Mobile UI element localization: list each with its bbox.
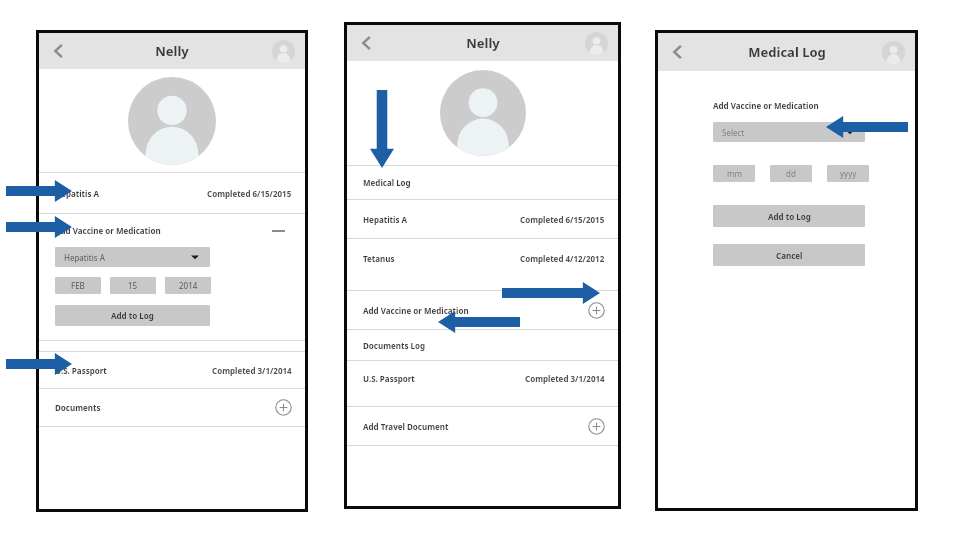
staticText: Completed 6/15/2015 [520,214,605,225]
staticText: U.S. Passport [363,373,415,384]
staticText: Medical Log [748,43,826,61]
button[interactable]: Documents Log [347,330,618,360]
staticText: Completed 4/12/2012 [520,253,605,264]
button[interactable]: Add Vaccine or Medication [347,291,618,329]
staticText: mm [727,168,742,179]
staticText: Completed 3/1/2014 [525,373,605,384]
other: Add [588,418,605,435]
staticText: Completed 3/1/2014 [212,365,292,376]
button[interactable]: mm [713,165,755,182]
staticText: Add to Log [768,211,811,222]
staticText: FEB [71,280,85,291]
button[interactable]: Cancel [713,244,865,266]
button[interactable]: Add to Log [55,305,210,326]
button[interactable]: Hepatitis A [347,200,618,238]
staticText: Hepatitis A [64,252,105,263]
staticText: Medical Log [363,177,411,188]
button[interactable]: Documents [39,389,305,426]
button[interactable]: FEB [55,277,101,294]
other: Add [588,302,605,319]
staticText: Select [722,127,745,138]
button[interactable]: Profile [585,32,608,55]
button[interactable]: Add Travel Document [347,407,618,445]
staticText: 15 [128,280,138,291]
staticText: Add to Log [111,310,154,321]
staticText: dd [786,168,796,179]
staticText: 2014 [179,280,198,291]
button[interactable]: Profile [272,40,295,63]
button[interactable]: Profile [882,41,905,64]
button[interactable]: U.S. Passport [39,352,305,388]
button[interactable]: Back [667,41,689,63]
staticText: Nelly [155,42,189,60]
staticText: yyyy [840,168,857,179]
staticText: Documents Log [363,340,426,351]
staticText: Nelly [466,34,500,52]
staticText: Add Vaccine or Medication [363,305,469,316]
button[interactable]: Back [48,40,70,62]
other: Add [275,399,292,416]
button[interactable]: Add to Log [713,205,865,227]
button[interactable]: Select [713,122,865,142]
staticText: Add Vaccine or Medication [55,225,161,236]
staticText: Hepatitis A [363,214,408,225]
staticText: Add Travel Document [363,421,449,432]
button[interactable]: U.S. Passport [347,361,618,396]
button[interactable]: Hepatitis A [55,247,210,267]
button[interactable]: yyyy [827,165,869,182]
button[interactable]: 2014 [165,277,211,294]
button[interactable]: Back [356,32,378,54]
staticText: Hepatitis A [55,188,100,199]
staticText: Documents [55,402,101,413]
staticText: Completed 6/15/2015 [207,188,292,199]
button[interactable]: 15 [110,277,156,294]
button[interactable]: dd [770,165,812,182]
staticText: Add Vaccine or Medication [713,100,819,111]
button[interactable]: Tetanus [347,239,618,277]
button[interactable]: Medical Log [347,166,618,199]
staticText: Cancel [776,250,803,261]
button[interactable]: Hepatitis A [39,173,305,213]
staticText: Tetanus [363,253,395,264]
staticText: U.S. Passport [55,365,107,376]
button[interactable]: Add Vaccine or Medication [39,214,305,247]
